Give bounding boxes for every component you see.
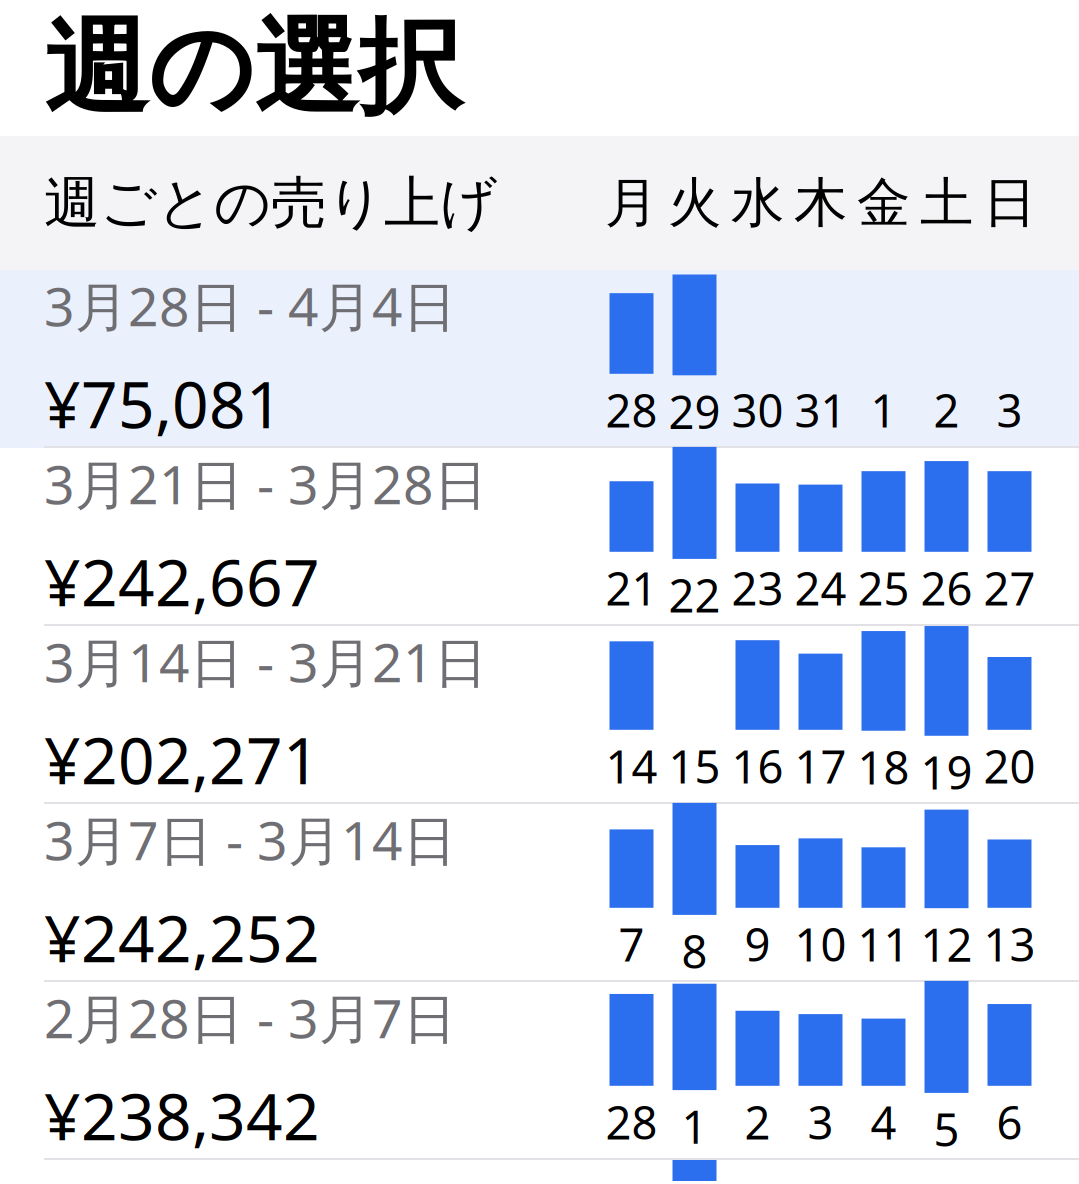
staticText: 4 [870,1092,896,1152]
staticText: 3月7日 - 3月14日 [44,804,456,875]
staticText: 10 [794,914,846,974]
staticText: 木 [794,170,847,236]
staticText: 28 [605,1092,657,1152]
button[interactable]: 3月14日 - 3月21日 [0,626,1079,804]
staticText: 18 [857,737,909,797]
staticText: 3 [996,380,1022,440]
staticText: 19 [920,742,972,802]
staticText: 11 [857,914,909,974]
staticText: 22 [668,565,720,625]
staticText: 2月28日 - 3月7日 [44,982,456,1053]
staticText: 29 [668,381,720,441]
staticText: 13 [983,914,1035,974]
staticText: ¥202,271 [44,717,320,802]
staticText: 9 [744,914,770,974]
staticText: 12 [920,914,972,974]
staticText: 17 [794,736,846,796]
button[interactable]: 3月21日 - 3月28日 [0,448,1079,626]
staticText: 14 [605,736,657,796]
staticText: 30 [731,380,783,440]
staticText: 5 [933,1099,959,1159]
staticText: 28 [605,380,657,440]
staticText: 25 [857,558,909,618]
staticText: 21 [605,558,657,618]
staticText: ¥242,667 [44,539,320,624]
staticText: 火 [668,170,721,236]
staticText: 3 [807,1092,833,1152]
staticText: ¥238,342 [44,1073,320,1158]
staticText: 31 [794,380,846,440]
staticText: 20 [983,736,1035,796]
button[interactable]: 2月28日 - 3月7日 [0,982,1079,1160]
button[interactable]: 3月28日 - 4月4日 [0,270,1079,448]
staticText: 8 [681,921,707,981]
staticText: 3月14日 - 3月21日 [44,626,487,697]
staticText: 土 [920,170,973,236]
staticText: ¥75,081 [44,361,283,446]
staticText: 日 [983,170,1036,236]
staticText: 3月21日 - 3月28日 [44,448,487,519]
staticText: 水 [731,170,784,236]
staticText: 週ごとの売り上げ [44,169,497,237]
staticText: 1 [870,380,896,440]
staticText: 7 [618,914,644,974]
staticText: 3月28日 - 4月4日 [44,270,456,341]
staticText: ¥242,252 [44,895,320,980]
staticText: 2 [744,1092,770,1152]
staticText: 15 [668,736,720,796]
staticText: 26 [920,558,972,618]
staticText: 金 [857,170,910,236]
staticText: 27 [983,558,1035,618]
staticText: 1 [681,1096,707,1156]
staticText: 16 [731,736,783,796]
staticText: 週の選択 [44,4,462,132]
staticText: 24 [794,558,846,618]
staticText: 6 [996,1092,1022,1152]
button[interactable]: 3月7日 - 3月14日 [0,804,1079,982]
staticText: 2 [933,380,959,440]
staticText: 月 [605,170,658,236]
staticText: 23 [731,558,783,618]
